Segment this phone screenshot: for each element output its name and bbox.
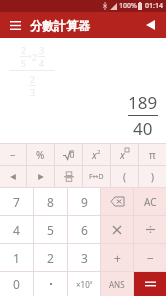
- staticText: 6: [81, 222, 88, 238]
- staticText: 01:14: [145, 1, 163, 11]
- button[interactable]: Move left: [0, 166, 26, 187]
- staticText: 4: [39, 57, 45, 69]
- staticText: 0: [13, 276, 20, 292]
- button[interactable]: 9: [68, 188, 100, 215]
- staticText: 3: [81, 250, 88, 266]
- staticText: 8: [47, 194, 54, 210]
- staticText: +: [27, 51, 32, 62]
- button[interactable]: [101, 216, 133, 243]
- button[interactable]: 7: [0, 188, 33, 215]
- button[interactable]: [34, 272, 67, 296]
- button[interactable]: 2: [34, 244, 67, 271]
- button[interactable]: √: [55, 144, 82, 165]
- button[interactable]: ANS: [101, 272, 133, 296]
- button[interactable]: 6: [68, 216, 100, 243]
- staticText: x: [120, 148, 125, 162]
- staticText: AC: [144, 195, 157, 209]
- button[interactable]: (: [111, 166, 138, 187]
- button[interactable]: π: [139, 144, 166, 165]
- staticText: 2: [30, 73, 36, 85]
- staticText: 3: [30, 86, 36, 98]
- staticText: 2: [21, 44, 27, 56]
- staticText: 9: [81, 194, 88, 210]
- button[interactable]: Fraction: [55, 166, 82, 187]
- staticText: x: [90, 279, 93, 286]
- staticText: ×10: [76, 279, 90, 290]
- staticText: +: [114, 250, 121, 266]
- button[interactable]: Menu: [5, 15, 25, 35]
- staticText: 4: [13, 222, 20, 238]
- button[interactable]: [134, 216, 166, 243]
- staticText: F↔D: [89, 172, 104, 182]
- staticText: 2: [97, 148, 101, 156]
- button[interactable]: 8: [34, 188, 67, 215]
- staticText: 分數計算器: [30, 18, 90, 33]
- button[interactable]: F↔D: [83, 166, 110, 187]
- button[interactable]: AC: [134, 188, 166, 215]
- staticText: 5: [47, 222, 54, 238]
- button[interactable]: 3: [68, 244, 100, 271]
- staticText: ANS: [109, 279, 125, 290]
- staticText: 2: [32, 51, 38, 63]
- button[interactable]: x: [111, 144, 138, 165]
- staticText: 7: [13, 194, 20, 210]
- button[interactable]: 5: [34, 216, 67, 243]
- button[interactable]: ×10: [68, 272, 100, 296]
- button[interactable]: Back: [140, 15, 160, 35]
- button[interactable]: Backspace: [101, 188, 133, 215]
- staticText: −: [10, 148, 16, 162]
- button[interactable]: 0: [0, 272, 33, 296]
- staticText: 1: [13, 250, 20, 266]
- button[interactable]: %: [27, 144, 54, 165]
- staticText: 100%: [119, 1, 137, 11]
- staticText: ): [151, 170, 154, 184]
- button[interactable]: −: [134, 244, 166, 271]
- staticText: 40: [133, 117, 153, 140]
- staticText: 189: [128, 91, 158, 114]
- staticText: 3: [39, 44, 45, 56]
- staticText: (: [123, 170, 126, 184]
- staticText: π: [149, 148, 156, 162]
- button[interactable]: 4: [0, 216, 33, 243]
- button[interactable]: ): [139, 166, 166, 187]
- button[interactable]: +: [101, 244, 133, 271]
- button[interactable]: x: [83, 144, 110, 165]
- staticText: %: [36, 148, 45, 162]
- staticText: 5: [21, 57, 27, 69]
- staticText: 2: [47, 250, 54, 266]
- button[interactable]: [134, 272, 166, 296]
- staticText: −: [147, 250, 154, 266]
- button[interactable]: Move right: [27, 166, 54, 187]
- button[interactable]: 1: [0, 244, 33, 271]
- staticText: x: [92, 148, 97, 162]
- button[interactable]: −: [0, 144, 26, 165]
